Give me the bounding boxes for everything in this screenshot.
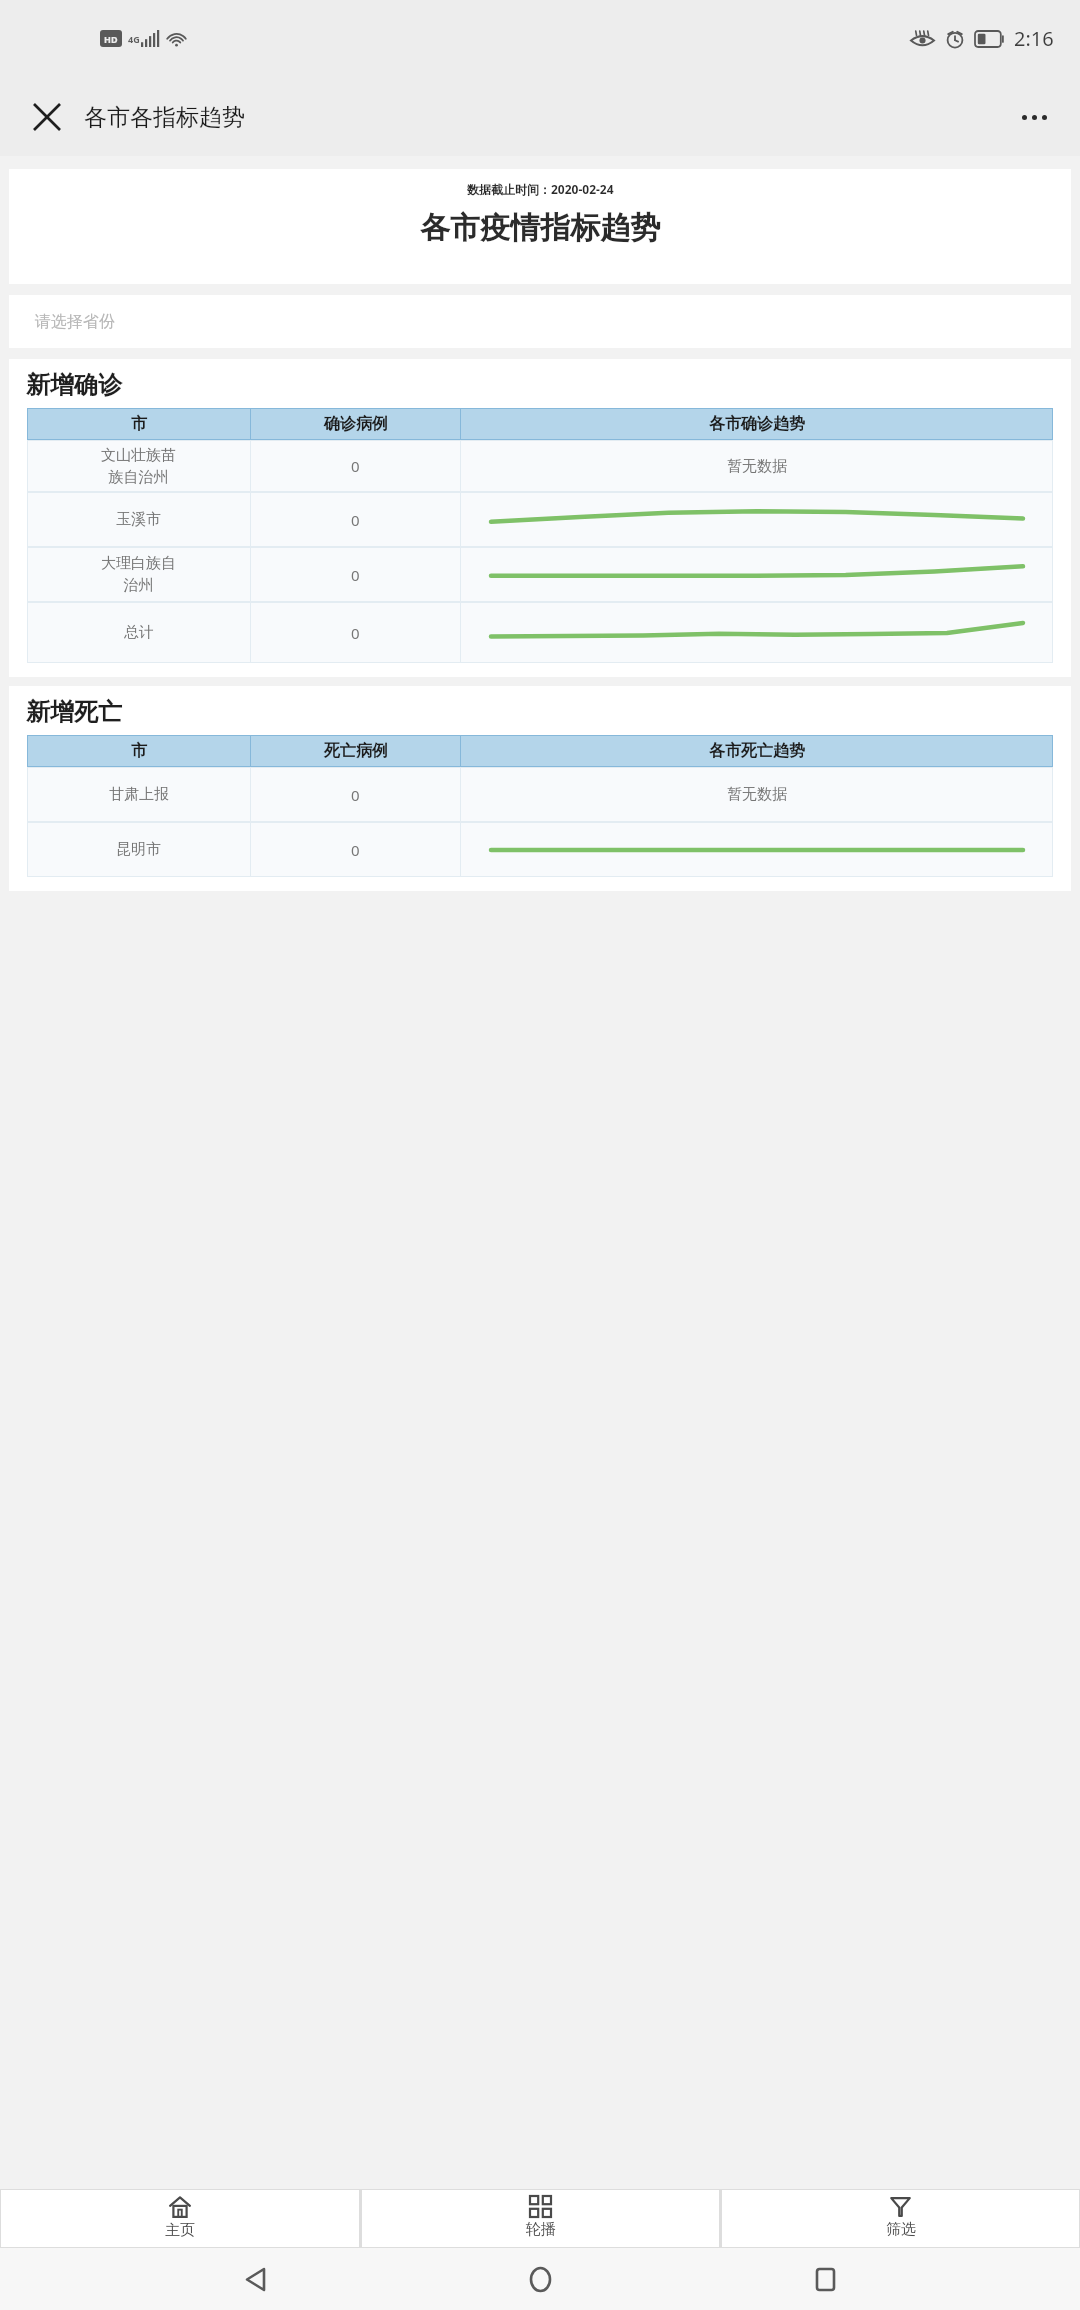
button[interactable]: Close: [24, 94, 70, 140]
staticText: 文山壮族苗 族自治州: [101, 446, 176, 487]
staticText: 玉溪市: [116, 510, 161, 529]
staticText: 0: [351, 565, 360, 585]
staticText: 昆明市: [116, 840, 161, 859]
staticText: 2:16: [1014, 25, 1054, 52]
staticText: 请选择省份: [35, 312, 115, 332]
staticText: 各市疫情指标趋势: [420, 209, 660, 247]
staticText: 大理白族自 治州: [101, 554, 176, 595]
staticText: 死亡病例: [324, 741, 388, 761]
staticText: 数据截止时间：2020-02-24: [467, 181, 614, 197]
staticText: 轮播: [526, 2220, 556, 2239]
button[interactable]: 主页: [0, 2189, 360, 2248]
staticText: 新增确诊: [26, 370, 122, 400]
staticText: 0: [351, 510, 360, 530]
button[interactable]: 轮播: [361, 2189, 720, 2248]
staticText: 市: [131, 414, 147, 434]
staticText: 各市各指标趋势: [84, 103, 245, 132]
staticText: 0: [351, 840, 360, 860]
button[interactable]: 筛选: [721, 2189, 1080, 2248]
staticText: 0: [351, 623, 360, 643]
staticText: 各市死亡趋势: [709, 741, 805, 761]
staticText: 总计: [124, 623, 154, 642]
staticText: 甘肃上报: [109, 785, 169, 804]
button[interactable]: Back: [225, 2249, 285, 2309]
staticText: 新增死亡: [26, 697, 122, 727]
staticText: 主页: [165, 2221, 195, 2240]
staticText: 各市确诊趋势: [709, 414, 805, 434]
staticText: 0: [351, 456, 360, 476]
button[interactable]: More options: [1010, 93, 1058, 141]
button[interactable]: Recent apps: [795, 2249, 855, 2309]
button[interactable]: 请选择省份: [9, 295, 1071, 348]
staticText: 市: [131, 741, 147, 761]
staticText: 筛选: [886, 2220, 916, 2239]
staticText: 0: [351, 785, 360, 805]
staticText: 确诊病例: [324, 414, 388, 434]
staticText: 暂无数据: [727, 785, 787, 804]
staticText: HD: [104, 33, 118, 45]
staticText: 4G: [128, 33, 140, 45]
button[interactable]: Home: [510, 2249, 570, 2309]
staticText: 暂无数据: [727, 457, 787, 476]
